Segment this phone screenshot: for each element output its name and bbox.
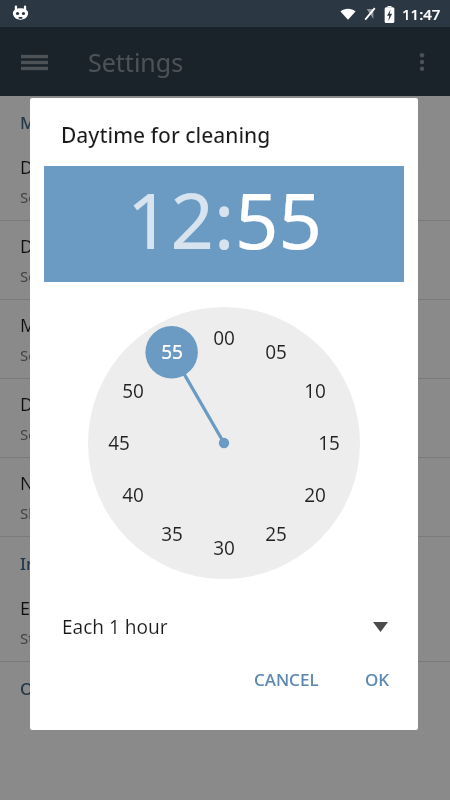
button[interactable]: OK [351, 658, 404, 701]
staticText: Main [20, 111, 61, 134]
staticText: 25 [265, 521, 287, 547]
staticText: 55 [161, 339, 183, 365]
staticText: 40 [122, 482, 144, 508]
staticText: Mode of work [20, 313, 137, 338]
staticText: Set the duration [20, 424, 134, 444]
staticText: 30 [213, 535, 235, 561]
button[interactable]: 55 [235, 168, 322, 272]
button[interactable]: Duration of work [0, 379, 450, 458]
staticText: 05 [265, 339, 287, 365]
staticText: 00 [213, 325, 235, 351]
button[interactable]: External storage [0, 583, 450, 662]
staticText: State of storage [20, 628, 132, 648]
staticText: External storage [20, 596, 159, 621]
staticText: 20 [304, 482, 326, 508]
button[interactable]: Open navigation drawer [12, 40, 56, 84]
button[interactable]: Daytime for wetting [0, 221, 450, 300]
staticText: Select the mode [20, 345, 134, 365]
staticText: Set the time [20, 266, 105, 286]
staticText: 15 [318, 430, 340, 456]
button[interactable]: Mode of work [0, 300, 450, 379]
button[interactable]: CANCEL [240, 658, 333, 701]
button[interactable]: Each 1 hour [44, 603, 404, 651]
staticText: 11:47 [402, 4, 441, 24]
staticText: Show notification [20, 503, 142, 523]
button[interactable]: Daytime for cleaning [0, 142, 450, 221]
button[interactable]: 12 [127, 168, 214, 272]
staticText: Daytime for wetting [20, 234, 189, 259]
staticText: Daytime for cleaning [61, 121, 271, 150]
staticText: OK [365, 668, 390, 691]
staticText: 35 [161, 521, 183, 547]
staticText: Daytime for cleaning [20, 155, 196, 180]
staticText: Settings [88, 45, 184, 79]
staticText: Other [20, 677, 68, 700]
staticText: : [214, 168, 235, 272]
staticText: 45 [108, 430, 130, 456]
button[interactable]: More options [400, 40, 444, 84]
staticText: 10 [304, 378, 326, 404]
staticText: Set the time [20, 187, 105, 207]
staticText: Each 1 hour [62, 614, 168, 640]
staticText: Informations [20, 552, 127, 575]
staticText: Duration of work [20, 392, 164, 417]
staticText: 50 [122, 378, 144, 404]
staticText: CANCEL [254, 668, 319, 691]
button[interactable]: Minute picker [88, 307, 360, 579]
button[interactable]: Notification [0, 458, 450, 537]
staticText: Notification [20, 471, 119, 496]
